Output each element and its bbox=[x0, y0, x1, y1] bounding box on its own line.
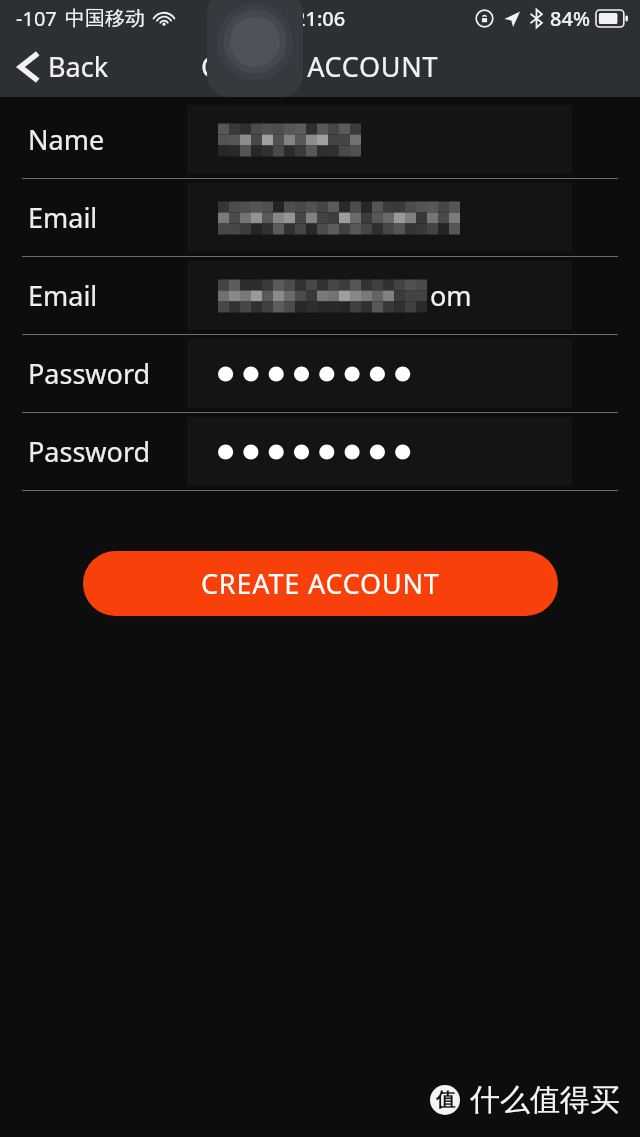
button[interactable]: Back bbox=[0, 40, 127, 93]
staticText: 21:06 bbox=[294, 5, 346, 32]
staticText: Email bbox=[28, 199, 98, 236]
staticText: 中国移动 bbox=[65, 6, 145, 31]
staticText: -107 bbox=[16, 5, 57, 32]
staticText: CREATE ACCOUNT bbox=[201, 48, 439, 85]
staticText: om bbox=[430, 277, 472, 314]
staticText: Email bbox=[28, 277, 98, 314]
staticText: 值 bbox=[436, 1088, 455, 1112]
staticText: Password bbox=[28, 433, 151, 470]
button[interactable]: Email bbox=[0, 183, 640, 252]
staticText: Password bbox=[28, 355, 151, 392]
staticText: Name bbox=[28, 121, 105, 158]
button[interactable]: Email bbox=[0, 261, 640, 330]
staticText: Back bbox=[48, 48, 109, 85]
staticText: CREATE ACCOUNT bbox=[201, 565, 440, 602]
button[interactable]: CREATE ACCOUNT bbox=[83, 551, 558, 616]
button[interactable]: Assistive touch bbox=[207, 0, 303, 97]
button[interactable]: Name bbox=[0, 105, 640, 174]
button[interactable]: Password bbox=[0, 417, 640, 486]
staticText: 84% bbox=[550, 5, 590, 32]
staticText: 什么值得买 bbox=[470, 1081, 620, 1119]
button[interactable]: Password bbox=[0, 339, 640, 408]
